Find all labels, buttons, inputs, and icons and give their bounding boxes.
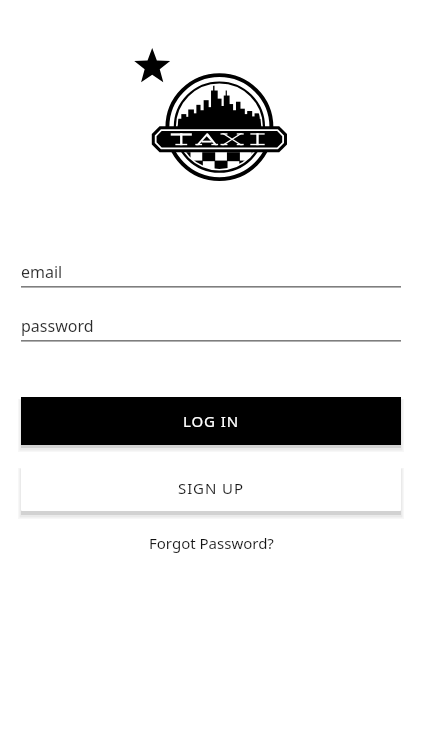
staticText: Forgot Password?	[149, 533, 274, 553]
button[interactable]: LOG IN	[21, 397, 401, 445]
staticText: password	[21, 315, 94, 337]
button[interactable]: SIGN UP	[21, 465, 401, 511]
button[interactable]: password	[21, 312, 401, 344]
button[interactable]: email	[21, 258, 401, 290]
staticText: email	[21, 261, 63, 283]
staticText: LOG IN	[183, 411, 239, 431]
button[interactable]: Forgot Password?	[21, 529, 401, 557]
staticText: SIGN UP	[178, 478, 244, 498]
